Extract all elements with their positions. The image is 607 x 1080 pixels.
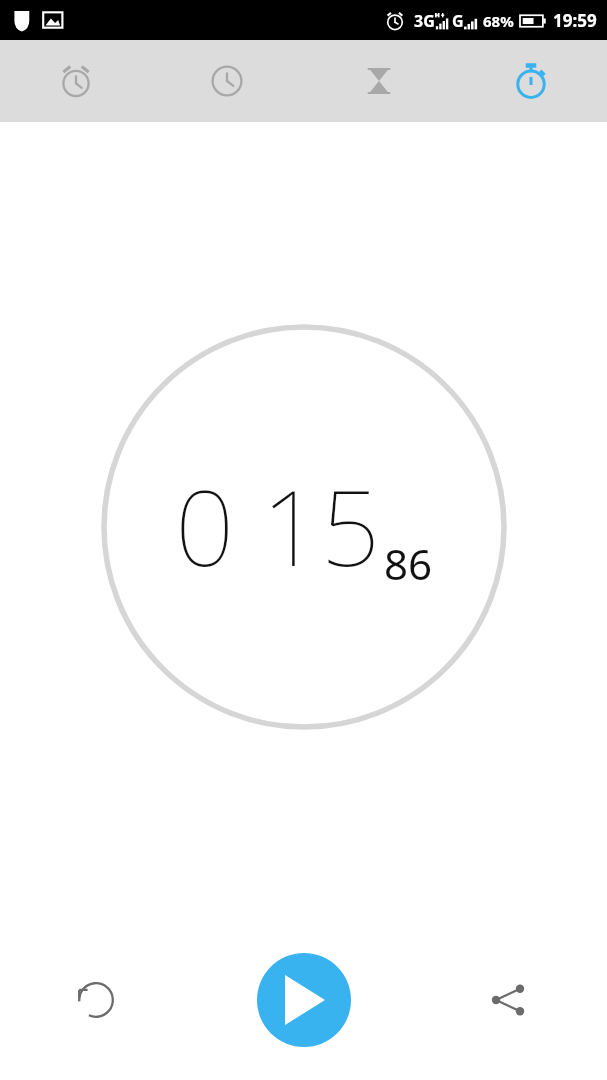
staticText: 3G: [414, 10, 435, 32]
button[interactable]: Stopwatch: [455, 40, 607, 122]
button[interactable]: Share: [477, 969, 539, 1031]
button[interactable]: Alarm: [0, 40, 151, 122]
button[interactable]: Timer: [303, 40, 455, 122]
button[interactable]: Reset: [65, 969, 127, 1031]
staticText: 68%: [483, 11, 514, 31]
button[interactable]: Clock: [151, 40, 303, 122]
staticText: 0 15: [175, 455, 380, 597]
staticText: 19:59: [553, 9, 597, 32]
staticText: 86: [384, 535, 433, 592]
staticText: G: [452, 10, 464, 32]
button[interactable]: Start: [257, 953, 351, 1047]
